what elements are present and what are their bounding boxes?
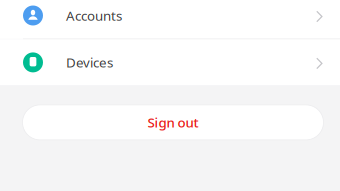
button[interactable]: Sign out <box>22 105 323 140</box>
staticText: Sign out <box>147 113 198 131</box>
staticText: Devices <box>66 53 113 71</box>
staticText: Accounts <box>66 7 122 24</box>
button[interactable]: Accounts <box>0 0 340 38</box>
button[interactable]: Devices <box>0 39 340 85</box>
